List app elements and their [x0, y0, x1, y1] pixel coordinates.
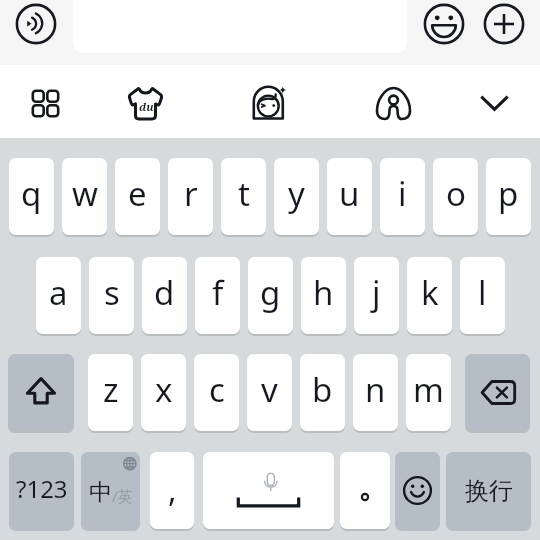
button[interactable]: y: [274, 158, 319, 235]
button[interactable]: u: [327, 158, 372, 235]
button[interactable]: Panels: [21, 79, 70, 128]
staticText: 换行: [465, 476, 513, 506]
button[interactable]: Enter: [446, 452, 531, 529]
button[interactable]: q: [9, 158, 54, 235]
staticText: l: [478, 270, 487, 315]
staticText: f: [212, 270, 224, 315]
staticText: v: [261, 367, 278, 412]
staticText: p: [498, 171, 519, 216]
staticText: j: [372, 270, 381, 315]
staticText: q: [21, 171, 42, 216]
button[interactable]: x: [141, 354, 186, 431]
button[interactable]: j: [354, 257, 399, 334]
staticText: t: [238, 171, 250, 216]
staticText: z: [103, 367, 119, 412]
button[interactable]: z: [88, 354, 133, 431]
staticText: b: [312, 367, 333, 412]
staticText: n: [365, 367, 386, 412]
staticText: 中: [89, 478, 112, 507]
button[interactable]: k: [407, 257, 452, 334]
staticText: r: [184, 171, 198, 216]
button[interactable]: d: [142, 257, 187, 334]
staticText: ,: [168, 468, 177, 512]
staticText: k: [421, 270, 439, 315]
staticText: x: [155, 367, 173, 412]
button[interactable]: Assistant: [369, 79, 418, 128]
staticText: d: [154, 270, 175, 315]
button[interactable]: Space: [203, 452, 334, 529]
button[interactable]: Stickers: [244, 79, 293, 128]
button[interactable]: r: [168, 158, 213, 235]
button[interactable]: Comma: [150, 452, 194, 529]
button[interactable]: m: [406, 354, 451, 431]
staticText: w: [72, 171, 98, 216]
staticText: i: [398, 171, 407, 216]
button[interactable]: t: [221, 158, 266, 235]
staticText: s: [104, 270, 120, 315]
staticText: e: [128, 171, 147, 216]
button[interactable]: Switch Chinese English: [81, 452, 140, 529]
button[interactable]: Emoji: [420, 0, 468, 48]
button[interactable]: Shift: [8, 354, 74, 431]
button[interactable]: o: [433, 158, 478, 235]
button[interactable]: Backspace: [465, 354, 530, 431]
staticText: u: [339, 171, 360, 216]
button[interactable]: Skins: [121, 79, 170, 128]
staticText: g: [260, 270, 281, 315]
button[interactable]: s: [89, 257, 134, 334]
button[interactable]: Period: [340, 452, 390, 529]
staticText: m: [413, 367, 444, 412]
button[interactable]: n: [353, 354, 398, 431]
button[interactable]: h: [301, 257, 346, 334]
button[interactable]: i: [380, 158, 425, 235]
staticText: c: [209, 367, 225, 412]
button[interactable]: Voice input: [12, 0, 60, 48]
button[interactable]: w: [62, 158, 107, 235]
staticText: y: [288, 171, 305, 216]
button[interactable]: Collapse keyboard: [470, 79, 519, 128]
button[interactable]: Symbols: [9, 452, 74, 529]
staticText: /英: [112, 486, 133, 506]
staticText: a: [49, 270, 68, 315]
button[interactable]: e: [115, 158, 160, 235]
staticText: ?123: [16, 472, 68, 505]
button[interactable]: Add: [480, 0, 528, 48]
staticText: o: [446, 171, 466, 216]
button[interactable]: c: [194, 354, 239, 431]
button[interactable]: b: [300, 354, 345, 431]
button[interactable]: l: [460, 257, 505, 334]
button[interactable]: a: [36, 257, 81, 334]
staticText: h: [313, 270, 334, 315]
button[interactable]: g: [248, 257, 293, 334]
button[interactable]: f: [195, 257, 240, 334]
staticText: du: [139, 99, 154, 114]
button[interactable]: p: [486, 158, 531, 235]
button[interactable]: Emoji keyboard: [395, 452, 440, 529]
button[interactable]: v: [247, 354, 292, 431]
